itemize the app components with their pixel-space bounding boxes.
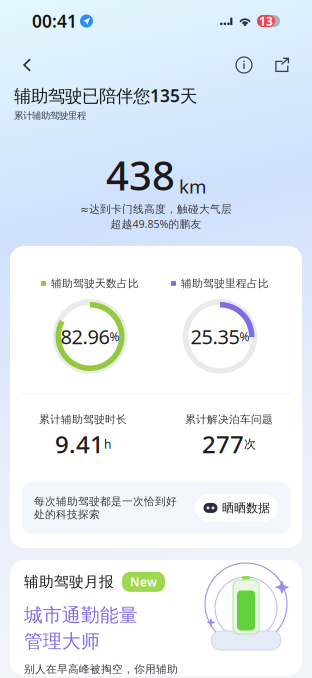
- button[interactable]: 晒晒数据: [195, 494, 278, 521]
- staticText: 累计解决泊车问题: [185, 413, 273, 426]
- staticText: km: [179, 174, 206, 199]
- staticText: 累计辅助驾驶里程: [14, 110, 86, 121]
- button[interactable]: Back: [12, 50, 42, 80]
- staticText: 城市通勤能量: [24, 604, 138, 627]
- staticText: 辅助驾驶里程占比: [181, 277, 269, 290]
- staticText: %: [239, 328, 249, 344]
- staticText: 次: [244, 437, 256, 451]
- staticText: 00:41: [32, 9, 77, 32]
- staticText: %: [109, 328, 119, 344]
- button[interactable]: Info: [230, 51, 258, 79]
- button[interactable]: Share: [268, 51, 296, 79]
- staticText: 辅助驾驶已陪伴您135天: [14, 84, 197, 107]
- staticText: ≈达到卡门线高度，触碰大气层: [80, 203, 232, 216]
- staticText: 别人在早高峰被掏空，你用辅助: [24, 663, 178, 676]
- staticText: 82.96: [60, 323, 109, 350]
- staticText: New: [130, 574, 157, 590]
- staticText: 累计辅助驾驶时长: [39, 413, 127, 426]
- staticText: 25.35: [190, 323, 239, 350]
- staticText: 辅助驾驶月报: [24, 573, 114, 591]
- staticText: 晒晒数据: [222, 501, 270, 515]
- staticText: 438: [106, 148, 175, 202]
- staticText: 超越49.85%的鹏友: [110, 217, 201, 231]
- staticText: 辅助驾驶天数占比: [51, 277, 139, 290]
- button[interactable]: 辅助驾驶月报: [10, 560, 302, 676]
- staticText: h: [104, 436, 111, 452]
- staticText: 13: [259, 13, 273, 29]
- staticText: 277: [202, 428, 244, 460]
- staticText: 9.41: [55, 428, 104, 460]
- staticText: 每次辅助驾驶都是一次恰到好 处的科技探索: [34, 495, 177, 521]
- staticText: 管理大师: [24, 630, 100, 653]
